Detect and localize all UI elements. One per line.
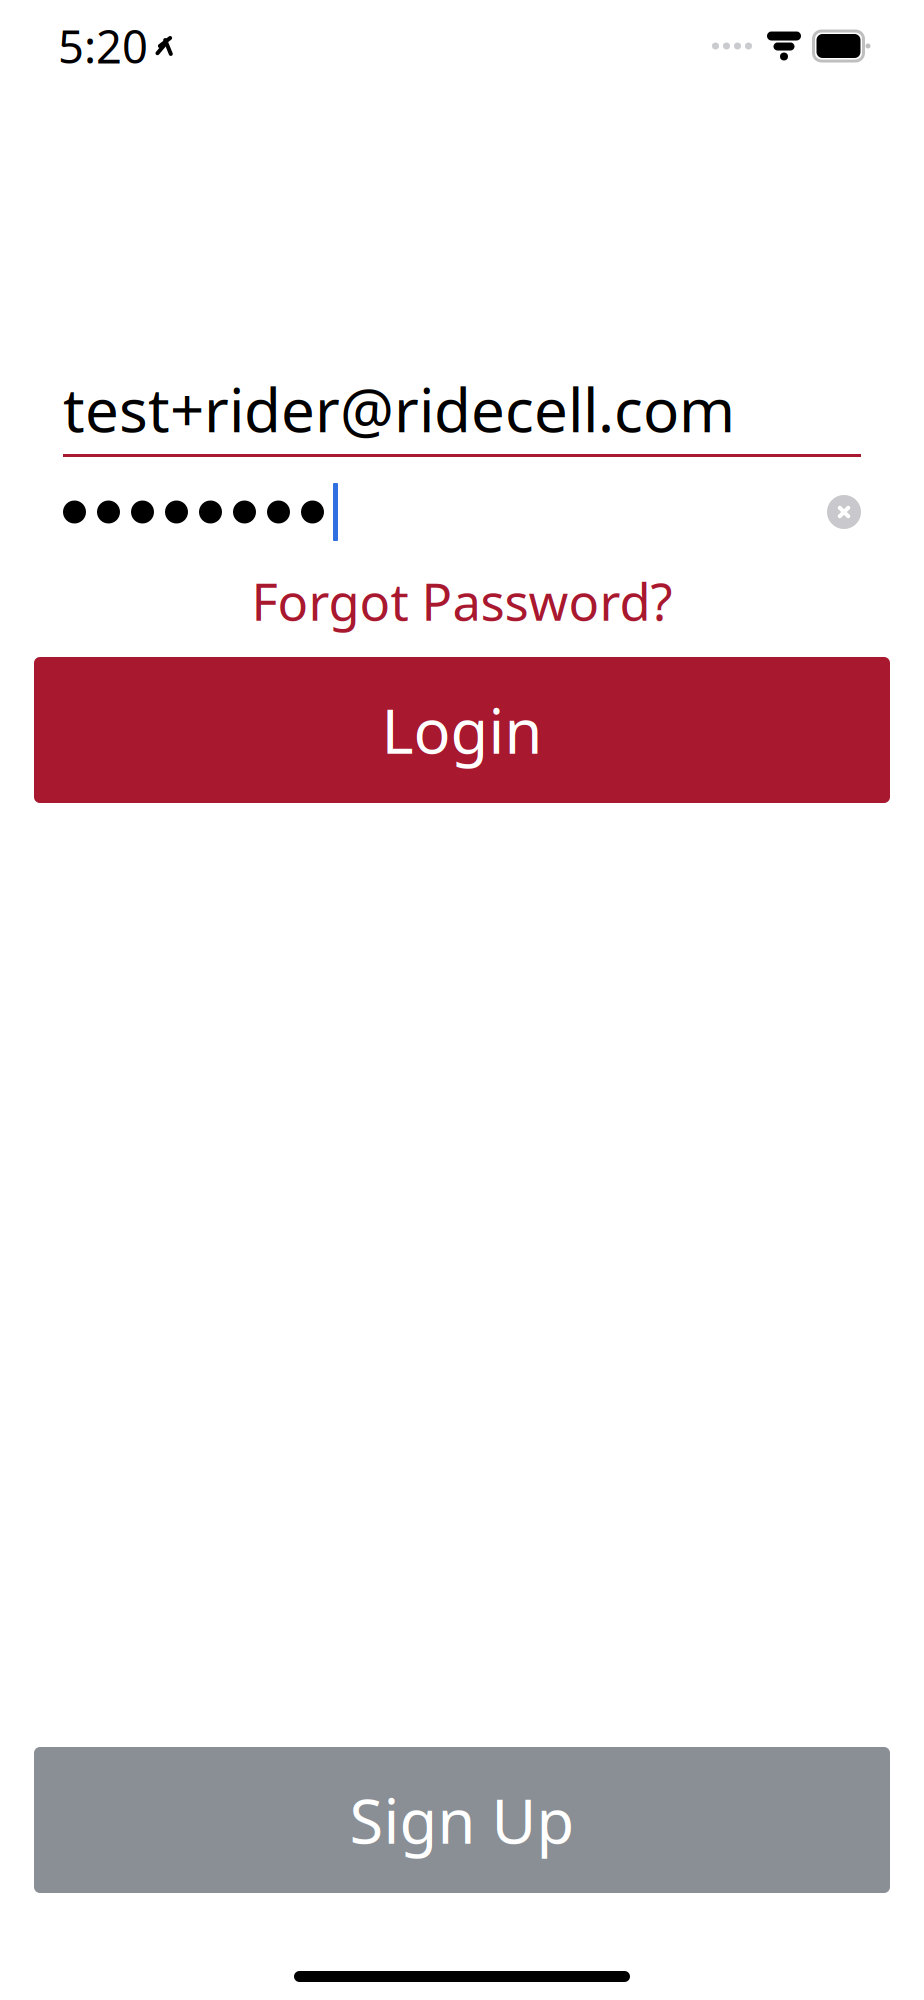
staticText: 5:20 xyxy=(58,16,148,76)
staticText: Forgot Password? xyxy=(251,567,672,635)
button[interactable]: Forgot Password? xyxy=(0,573,924,629)
button[interactable]: Sign Up xyxy=(34,1747,890,1893)
staticText: Login xyxy=(381,689,542,771)
staticText: test+rider@ridecell.com xyxy=(63,369,735,449)
staticText: Sign Up xyxy=(349,1779,574,1861)
button[interactable]: Clear password xyxy=(827,495,861,529)
button[interactable]: Login xyxy=(34,657,890,803)
